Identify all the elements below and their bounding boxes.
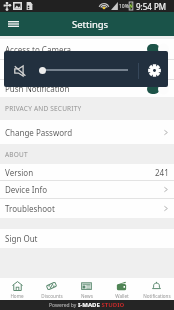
staticText: PRIVACY AND SECURITY <box>5 104 82 113</box>
button[interactable]: Wallet <box>104 278 139 300</box>
button[interactable]: Notifications <box>139 278 174 300</box>
staticText: News <box>81 293 93 299</box>
staticText: Change Password <box>5 127 73 138</box>
staticText: Troubleshoot <box>5 203 55 214</box>
staticText: 9:54 PM <box>136 1 167 12</box>
staticText: Device Info <box>5 184 47 195</box>
staticText: Notifications <box>143 293 171 299</box>
staticText: Access to Camera <box>5 44 72 55</box>
button[interactable]: Push Notification <box>0 80 174 97</box>
button[interactable]: News <box>69 278 104 300</box>
staticText: ABOUT <box>5 150 28 159</box>
button[interactable]: Sound settings <box>148 64 161 77</box>
button[interactable]: Troubleshoot <box>0 199 174 218</box>
staticText: 10% <box>119 3 129 10</box>
staticText: Discounts <box>41 293 63 299</box>
button[interactable]: Access to Camera <box>0 39 174 59</box>
button[interactable]: Sign Out <box>0 229 174 248</box>
button[interactable]: Change Password <box>0 120 174 144</box>
staticText: Settings <box>72 18 109 31</box>
button[interactable]: Toggle switch, on <box>147 43 170 55</box>
staticText: Sign Out <box>5 233 38 244</box>
button[interactable]: Toggle switch, on <box>147 83 170 95</box>
staticText: Home <box>10 293 24 299</box>
staticText: Push Notification <box>5 83 70 94</box>
staticText: I-MADE <box>78 301 100 309</box>
staticText: STUDIO <box>100 301 125 309</box>
staticText: Version <box>5 167 34 178</box>
staticText: 241 <box>155 167 169 178</box>
button[interactable]: Mute <box>14 65 27 77</box>
button[interactable]: Toggle switch, on <box>0 60 174 79</box>
staticText: Wallet <box>115 293 129 299</box>
button[interactable]: Discounts <box>34 278 69 300</box>
button[interactable]: Device Info <box>0 181 174 198</box>
button[interactable]: Version <box>0 164 174 180</box>
button[interactable]: Toggle switch, on <box>147 64 170 76</box>
staticText: Powered by <box>49 302 78 309</box>
button[interactable]: Open navigation menu <box>4 16 22 32</box>
button[interactable]: Home <box>0 278 34 300</box>
